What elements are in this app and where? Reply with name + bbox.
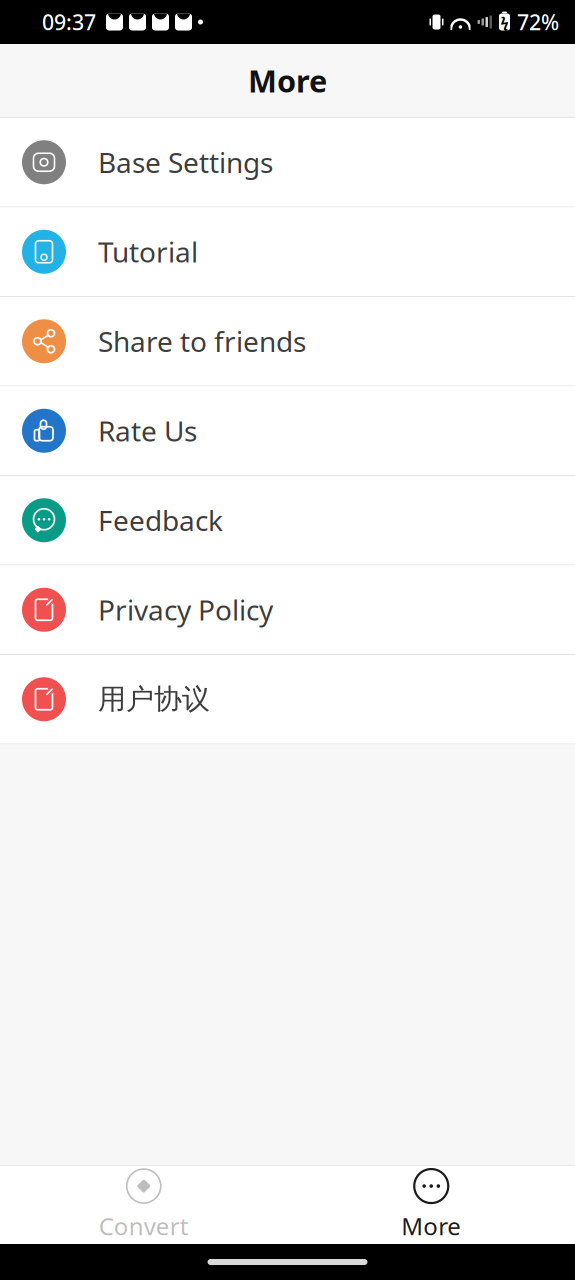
button[interactable]: More (287, 1166, 575, 1244)
staticText: ϟ (500, 12, 508, 32)
staticText: More (401, 1210, 461, 1242)
staticText: More (248, 60, 327, 101)
button[interactable]: 用户协议 (0, 655, 575, 744)
staticText: 72% (517, 8, 559, 36)
staticText: Rate Us (98, 412, 197, 449)
button[interactable]: Share to friends (0, 297, 575, 386)
button[interactable]: Privacy Policy (0, 565, 575, 655)
button[interactable]: Tutorial (0, 207, 575, 297)
staticText: Convert (99, 1210, 189, 1242)
button[interactable]: Feedback (0, 476, 575, 565)
staticText: Base Settings (98, 144, 273, 181)
button[interactable]: Rate Us (0, 386, 575, 476)
button[interactable]: Convert (0, 1166, 287, 1244)
button[interactable]: Base Settings (0, 118, 575, 207)
staticText: Tutorial (98, 233, 198, 270)
staticText: Share to friends (98, 323, 306, 360)
staticText: Feedback (98, 502, 223, 539)
staticText: Privacy Policy (98, 591, 273, 628)
staticText: 用户协议 (98, 682, 210, 716)
staticText: 09:37 (42, 8, 96, 36)
